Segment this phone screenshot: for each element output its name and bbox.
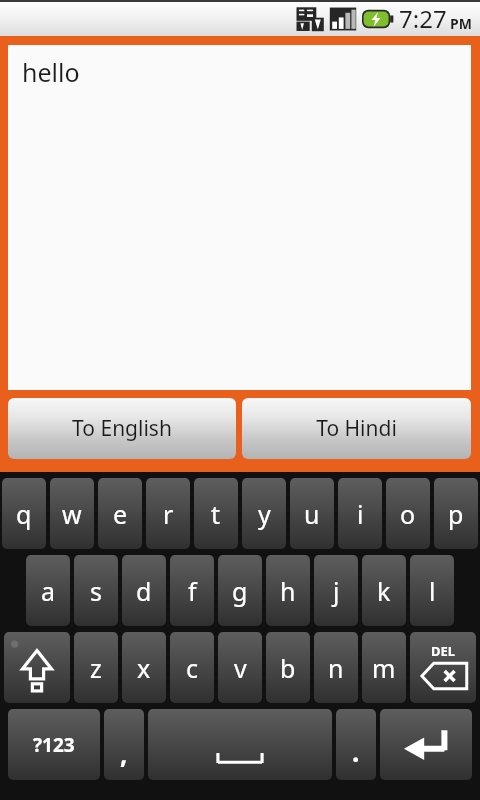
button[interactable]: Period [336, 709, 376, 780]
staticText: hello [22, 55, 80, 89]
button[interactable]: p [434, 478, 478, 549]
button[interactable]: k [362, 555, 406, 626]
staticText: . [352, 734, 360, 769]
button[interactable]: t [194, 478, 238, 549]
button[interactable]: e [98, 478, 142, 549]
staticText: a [41, 574, 56, 608]
button[interactable]: i [338, 478, 382, 549]
button[interactable]: o [386, 478, 430, 549]
button[interactable]: z [74, 632, 118, 703]
button[interactable]: j [314, 555, 358, 626]
staticText: To Hindi [316, 414, 397, 443]
button[interactable]: g [218, 555, 262, 626]
staticText: f [188, 574, 197, 608]
staticText: b [280, 651, 296, 685]
button[interactable]: f [170, 555, 214, 626]
staticText: k [377, 574, 391, 608]
staticText: p [448, 497, 464, 531]
staticText: g [232, 574, 248, 608]
button[interactable]: y [242, 478, 286, 549]
staticText: PM [450, 14, 472, 33]
button[interactable]: Shift [4, 632, 70, 703]
staticText: n [328, 651, 344, 685]
button[interactable]: ?123 [8, 709, 100, 780]
staticText: x [137, 651, 151, 685]
button[interactable]: b [266, 632, 310, 703]
staticText: DEL [431, 642, 456, 660]
button[interactable]: a [26, 555, 70, 626]
button[interactable]: d [122, 555, 166, 626]
staticText: q [16, 497, 32, 531]
staticText: s [90, 574, 102, 608]
staticText: o [400, 497, 416, 531]
staticText: r [163, 497, 174, 531]
button[interactable]: q [2, 478, 46, 549]
button[interactable]: hello [8, 45, 471, 390]
button[interactable]: w [50, 478, 94, 549]
staticText: l [429, 574, 436, 608]
button[interactable]: n [314, 632, 358, 703]
button[interactable]: v [218, 632, 262, 703]
staticText: t [211, 497, 221, 531]
staticText: d [136, 574, 152, 608]
button[interactable]: h [266, 555, 310, 626]
staticText: w [62, 497, 82, 531]
staticText: 7:27 [399, 2, 447, 35]
button[interactable]: To Hindi [242, 398, 471, 459]
staticText: y [258, 497, 271, 531]
staticText: To English [72, 414, 172, 443]
staticText: , [120, 736, 128, 771]
button[interactable]: To English [8, 398, 236, 459]
button[interactable]: x [122, 632, 166, 703]
staticText: c [186, 651, 199, 685]
button[interactable]: l [410, 555, 454, 626]
button[interactable]: Comma [104, 709, 144, 780]
button[interactable]: Enter [380, 709, 472, 780]
staticText: h [280, 574, 296, 608]
button[interactable]: Delete [410, 632, 476, 703]
staticText: m [372, 651, 396, 685]
staticText: u [304, 497, 320, 531]
button[interactable]: u [290, 478, 334, 549]
staticText: j [333, 574, 340, 608]
button[interactable]: s [74, 555, 118, 626]
button[interactable]: m [362, 632, 406, 703]
staticText: ?123 [33, 732, 75, 758]
button[interactable]: Space [148, 709, 332, 780]
staticText: z [90, 651, 102, 685]
staticText: i [357, 497, 364, 531]
button[interactable]: r [146, 478, 190, 549]
staticText: v [234, 651, 247, 685]
button[interactable]: c [170, 632, 214, 703]
staticText: e [113, 497, 128, 531]
